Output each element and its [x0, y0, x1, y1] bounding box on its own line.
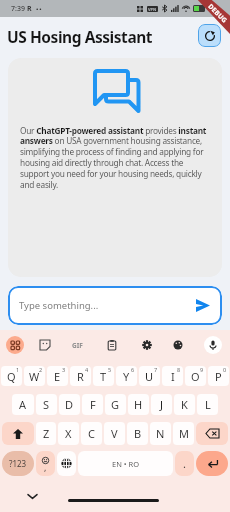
staticText: 9	[200, 366, 204, 373]
staticText: H	[134, 397, 143, 412]
button[interactable]: D	[59, 394, 80, 415]
staticText: A	[19, 397, 27, 412]
staticText: D	[65, 397, 74, 412]
button[interactable]: Stickers	[36, 336, 54, 354]
staticText: M	[179, 426, 189, 441]
staticText: Q	[7, 369, 16, 384]
button[interactable]: Apps	[6, 336, 24, 354]
staticText: 7	[154, 366, 158, 373]
staticText: G	[111, 397, 120, 412]
button[interactable]: Hide keyboard	[24, 488, 40, 504]
staticText: 4	[85, 366, 89, 373]
button[interactable]: Send	[192, 294, 214, 316]
button[interactable]: J	[151, 394, 172, 415]
staticText: 5	[108, 366, 112, 373]
staticText: Our ChatGPT-powered assistant provides i…	[20, 125, 209, 191]
staticText: Type something...	[19, 299, 99, 312]
staticText: R	[77, 369, 84, 384]
staticText: E	[54, 369, 61, 384]
staticText: S	[43, 397, 50, 412]
button[interactable]: Settings	[138, 336, 156, 354]
button[interactable]: N	[150, 422, 171, 445]
staticText: DEBUG	[206, 2, 230, 25]
staticText: I	[171, 369, 175, 384]
button[interactable]: E	[47, 366, 68, 386]
staticText: Y	[123, 369, 130, 384]
button[interactable]: O	[185, 366, 206, 386]
staticText: B	[134, 426, 142, 441]
button[interactable]: B	[127, 422, 148, 445]
staticText: X	[65, 426, 72, 441]
button[interactable]: K	[174, 394, 195, 415]
staticText: US Hosing Assistant	[7, 26, 153, 47]
button[interactable]: L	[197, 394, 218, 415]
button[interactable]: F	[82, 394, 103, 415]
button[interactable]: S	[36, 394, 57, 415]
staticText: VPN	[148, 7, 157, 12]
button[interactable]: I	[162, 366, 183, 386]
button[interactable]: M	[173, 422, 194, 445]
button[interactable]: Backspace	[196, 422, 228, 445]
staticText: F	[90, 397, 96, 412]
button[interactable]: Clipboard	[103, 336, 121, 354]
button[interactable]: Theme	[169, 336, 187, 354]
staticText: 0	[223, 366, 227, 373]
staticText: K	[181, 397, 188, 412]
staticText: ?123	[9, 458, 27, 469]
button[interactable]: U	[139, 366, 160, 386]
staticText: W	[29, 369, 40, 384]
staticText: 7:39	[11, 4, 25, 14]
staticText: C	[88, 426, 95, 441]
staticText: L	[205, 397, 211, 412]
button[interactable]: Refresh	[198, 24, 221, 47]
staticText: .	[183, 456, 186, 471]
staticText: ,	[44, 461, 47, 473]
button[interactable]: V	[104, 422, 125, 445]
button[interactable]: Change language	[57, 451, 76, 476]
staticText: U	[145, 369, 154, 384]
button[interactable]: H	[128, 394, 149, 415]
staticText: 3	[62, 366, 66, 373]
button[interactable]: ?123	[2, 451, 34, 476]
button[interactable]: A	[12, 394, 34, 415]
button[interactable]: C	[81, 422, 102, 445]
button[interactable]: P	[208, 366, 229, 386]
button[interactable]: Enter	[196, 451, 228, 476]
button[interactable]: T	[93, 366, 114, 386]
staticText: EN • RO	[112, 459, 140, 469]
button[interactable]: Z	[36, 422, 56, 445]
staticText: V	[111, 426, 118, 441]
button[interactable]: .	[175, 451, 194, 476]
staticText: 2	[39, 366, 43, 373]
staticText: 6	[131, 366, 135, 373]
button[interactable]: Shift	[2, 422, 34, 445]
staticText: Z	[43, 426, 50, 441]
staticText: O	[191, 369, 200, 384]
staticText: T	[100, 369, 107, 384]
button[interactable]: X	[58, 422, 79, 445]
staticText: J	[160, 397, 164, 412]
button[interactable]: Q	[1, 366, 22, 386]
staticText: 8	[177, 366, 181, 373]
staticText: 1	[16, 366, 20, 373]
button[interactable]: Voice input	[204, 336, 222, 354]
button[interactable]: EN • RO	[78, 451, 173, 476]
button[interactable]: GIF	[68, 336, 86, 354]
button[interactable]: Y	[116, 366, 137, 386]
button[interactable]: R	[70, 366, 91, 386]
staticText: R	[27, 4, 32, 14]
button[interactable]: Emoji and comma	[36, 451, 55, 476]
button[interactable]: G	[105, 394, 126, 415]
staticText: P	[215, 369, 222, 384]
button[interactable]: W	[24, 366, 45, 386]
button[interactable]: Type something...	[8, 286, 222, 325]
staticText: GIF	[72, 341, 83, 350]
staticText: N	[156, 426, 165, 441]
